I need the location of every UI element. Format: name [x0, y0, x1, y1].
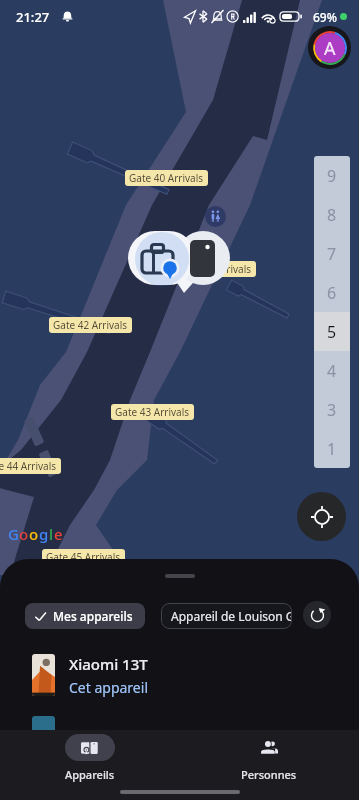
staticText: o	[19, 524, 29, 544]
staticText: Gate 42 Arrivals	[53, 318, 128, 332]
staticText: G	[8, 524, 19, 544]
staticText: Mes appareils	[53, 608, 133, 624]
staticText: e	[54, 524, 63, 544]
staticText: Appareil de Louison Gu	[171, 608, 292, 624]
staticText: 5	[327, 321, 337, 343]
staticText: Gate 40 Arrivals	[129, 171, 204, 185]
staticText: 8	[327, 204, 337, 226]
button[interactable]: 9	[314, 156, 350, 195]
staticText: 7	[327, 243, 337, 265]
staticText: Xiaomi 13T	[69, 654, 148, 674]
staticText: 69%	[313, 9, 337, 25]
button[interactable]: 1	[314, 429, 350, 468]
staticText: Cet appareil	[69, 678, 148, 697]
staticText: Appareils	[65, 767, 115, 782]
staticText: 3	[327, 399, 337, 421]
button[interactable]: Appareils	[0, 730, 179, 782]
staticText: 6	[327, 282, 337, 304]
staticText: Gate 44 Arrivals	[0, 459, 57, 473]
staticText: o	[29, 524, 39, 544]
button[interactable]: 4	[314, 351, 350, 390]
button[interactable]: Phone location	[178, 231, 232, 285]
staticText: Gate 45 Arrivals	[46, 550, 121, 564]
staticText: 1	[327, 438, 337, 460]
button[interactable]: 8	[314, 195, 350, 234]
button[interactable]: 7	[314, 234, 350, 273]
staticText: 4	[327, 360, 337, 382]
button[interactable]: Account	[308, 26, 351, 69]
button[interactable]: Appareil de Louison Gu	[161, 603, 292, 629]
staticText: l	[49, 524, 54, 544]
staticText: 21:27	[16, 8, 50, 26]
staticText: A	[324, 36, 336, 61]
staticText: g	[39, 524, 49, 544]
button[interactable]: 5	[314, 312, 350, 351]
button[interactable]: 6	[314, 273, 350, 312]
button[interactable]: Mes appareils	[25, 603, 145, 629]
staticText: Gate 43 Arrivals	[115, 405, 190, 419]
staticText: Personnes	[241, 767, 297, 782]
button[interactable]	[0, 709, 359, 765]
button[interactable]: My location	[297, 492, 346, 541]
button[interactable]: Personnes	[179, 730, 359, 782]
button[interactable]: Refresh	[303, 601, 331, 629]
button[interactable]: 3	[314, 390, 350, 429]
staticText: 9	[327, 165, 337, 187]
button[interactable]: Bag location	[128, 231, 196, 285]
button[interactable]: Xiaomi 13T	[0, 647, 359, 703]
staticText: Gate 41 Arrivals	[177, 262, 252, 276]
